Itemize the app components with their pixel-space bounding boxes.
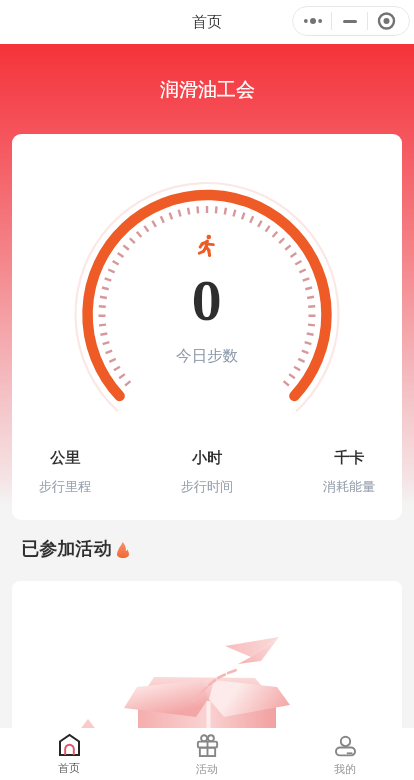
staticText: 活动 (196, 762, 218, 776)
staticText: 公里 (50, 449, 80, 468)
button[interactable]: 我的 (276, 728, 414, 780)
button[interactable]: Minimize (332, 6, 367, 36)
staticText: 首页 (58, 761, 80, 775)
staticText: 0 (192, 264, 222, 335)
button[interactable]: More options (292, 6, 331, 36)
button[interactable]: 活动 (138, 728, 276, 780)
button[interactable]: Close (368, 6, 410, 36)
staticText: 步行时间 (181, 478, 233, 494)
staticText: 千卡 (334, 449, 364, 468)
staticText: 步行里程 (39, 478, 91, 494)
staticText: 消耗能量 (323, 478, 375, 494)
button[interactable]: 首页 (0, 728, 138, 780)
staticText: 小时 (192, 449, 222, 468)
staticText: 已参加活动 (21, 538, 111, 561)
staticText: 首页 (192, 13, 222, 32)
staticText: 润滑油工会 (160, 78, 255, 102)
staticText: 我的 (334, 762, 356, 776)
staticText: 今日步数 (176, 346, 238, 366)
